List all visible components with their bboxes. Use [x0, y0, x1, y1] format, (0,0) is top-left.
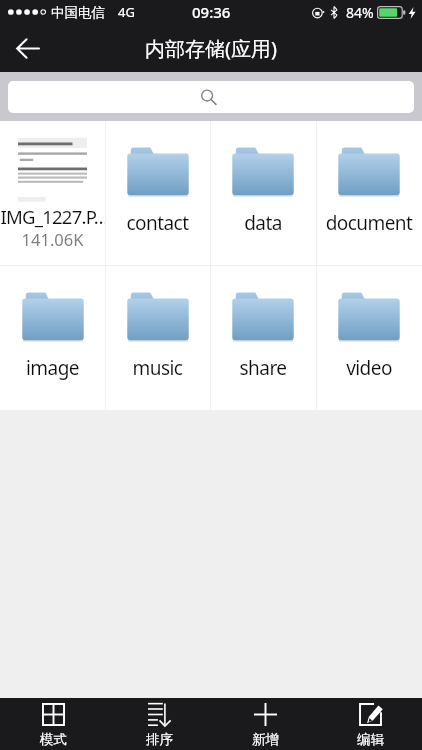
staticText: contact [106, 210, 209, 236]
button[interactable]: 排序 [106, 698, 212, 750]
staticText: 141.06K [0, 228, 105, 250]
staticText: document [317, 210, 421, 236]
button[interactable]: Back [0, 24, 54, 72]
staticText: share [211, 355, 315, 381]
button[interactable]: 编辑 [318, 698, 422, 750]
button[interactable]: Search [8, 81, 414, 113]
button[interactable]: 新增 [212, 698, 318, 750]
staticText: image [1, 355, 104, 381]
staticText: 内部存储(应用) [145, 35, 277, 62]
staticText: data [211, 210, 315, 236]
button[interactable]: 模式 [0, 698, 106, 750]
button[interactable]: data [210, 121, 316, 265]
staticText: 中国电信 [51, 4, 105, 21]
staticText: 09:36 [192, 2, 231, 22]
button[interactable]: image [0, 266, 105, 410]
staticText: music [106, 355, 209, 381]
button[interactable]: music [105, 266, 210, 410]
staticText: 排序 [146, 731, 173, 748]
staticText: IMG_1227.P… [0, 204, 105, 229]
staticText: video [317, 355, 421, 381]
staticText: 模式 [40, 731, 67, 748]
staticText: 84% [346, 3, 374, 22]
button[interactable]: document [316, 121, 422, 265]
button[interactable]: video [316, 266, 422, 410]
button[interactable]: contact [105, 121, 210, 265]
button[interactable]: share [210, 266, 316, 410]
staticText: 新增 [252, 731, 279, 748]
staticText: 4G [118, 3, 135, 21]
button[interactable]: IMG_1227.P… [0, 121, 105, 265]
staticText: 编辑 [357, 731, 384, 748]
